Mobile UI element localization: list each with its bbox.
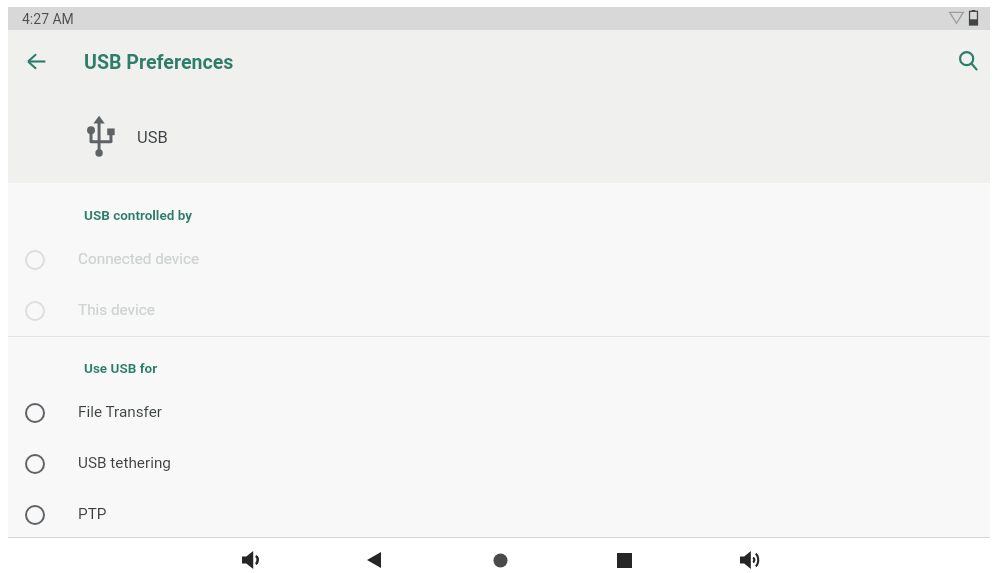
button[interactable]: Volume down: [232, 542, 268, 573]
staticText: 4:27 AM: [22, 11, 74, 27]
button[interactable]: USB tethering: [8, 438, 990, 489]
button[interactable]: Volume up: [731, 542, 767, 573]
button[interactable]: Recents: [606, 542, 642, 573]
button[interactable]: Back: [12, 37, 60, 85]
button[interactable]: Back: [356, 542, 392, 573]
staticText: Use USB for: [84, 360, 158, 376]
staticText: File Transfer: [78, 403, 163, 421]
staticText: USB controlled by: [84, 207, 193, 223]
staticText: Connected device: [78, 250, 200, 268]
staticText: USB tethering: [78, 454, 171, 472]
button[interactable]: Search: [946, 39, 990, 83]
staticText: USB Preferences: [84, 51, 234, 74]
button[interactable]: Connected device: [8, 234, 990, 285]
button[interactable]: PTP: [8, 489, 990, 540]
button[interactable]: File Transfer: [8, 387, 990, 438]
button[interactable]: Home: [482, 542, 518, 573]
staticText: USB: [137, 128, 168, 147]
staticText: PTP: [78, 505, 107, 523]
staticText: This device: [78, 301, 155, 319]
